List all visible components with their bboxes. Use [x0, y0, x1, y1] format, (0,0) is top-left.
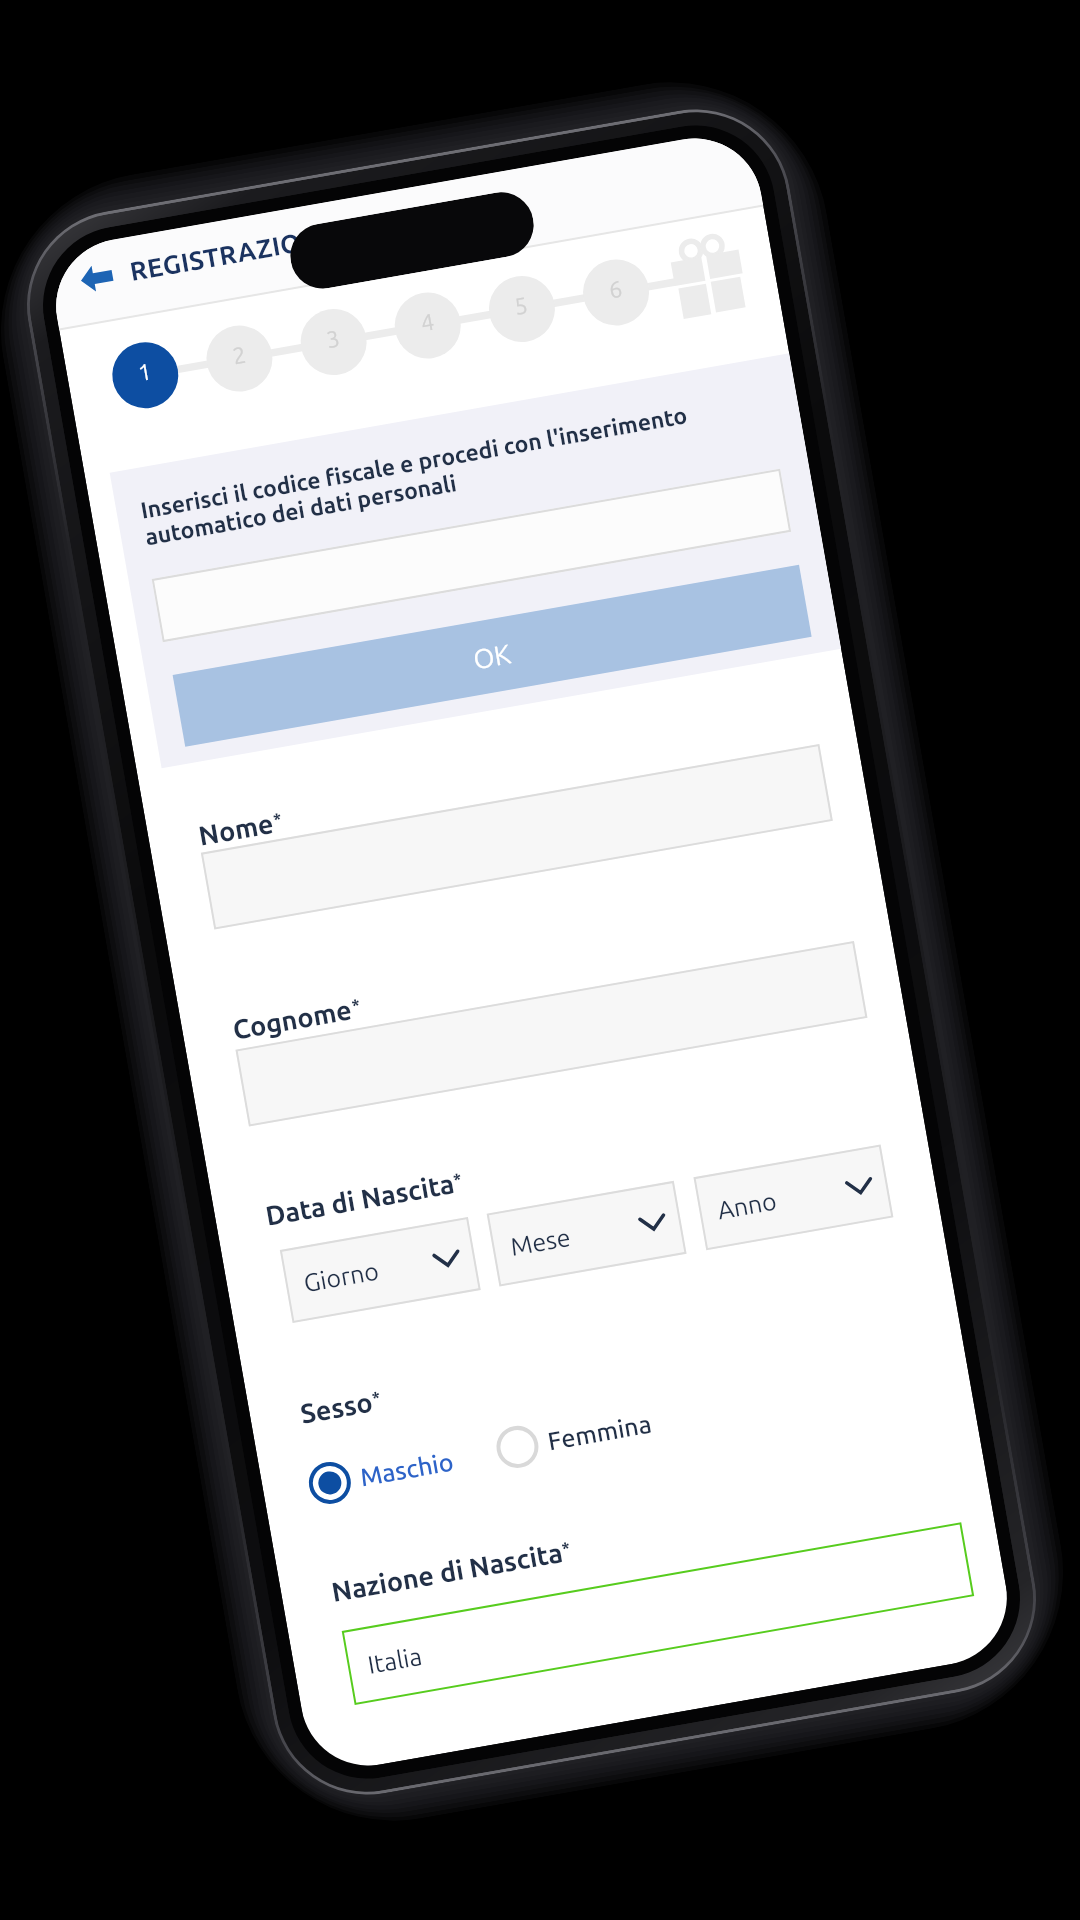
staticText: Giorno [301, 1256, 381, 1297]
button[interactable] [235, 941, 867, 1126]
staticText: Data di Nascita [263, 1168, 456, 1231]
staticText: Maschio [358, 1447, 455, 1491]
staticText: 4 [411, 307, 443, 338]
button[interactable]: Giorno [280, 1217, 481, 1323]
staticText: Sesso [298, 1387, 375, 1429]
staticText: * [452, 1169, 464, 1189]
staticText: Nome [196, 808, 276, 851]
staticText: Anno [715, 1186, 779, 1224]
button[interactable]: OK [173, 565, 812, 747]
staticText: Cognome [230, 994, 355, 1045]
staticText: * [560, 1537, 572, 1558]
staticText: 1 [129, 357, 161, 387]
button[interactable]: Italia [342, 1522, 974, 1705]
staticText: * [271, 808, 284, 829]
button[interactable]: Back [77, 257, 119, 299]
staticText: 6 [599, 274, 632, 305]
button[interactable]: Mese [487, 1181, 686, 1287]
staticText: OK [471, 638, 513, 674]
button[interactable]: Anno [693, 1144, 893, 1250]
staticText: 3 [317, 324, 349, 354]
staticText: Nazione di Nascita [329, 1537, 565, 1607]
button[interactable]: Femmina [492, 1399, 656, 1475]
staticText: REGISTRAZIONE [128, 221, 338, 286]
button[interactable] [152, 469, 791, 642]
staticText: Inserisci il codice fiscale e procedi co… [138, 387, 778, 550]
staticText: * [370, 1387, 382, 1407]
staticText: * [350, 994, 362, 1015]
staticText: Italia [366, 1642, 425, 1679]
button[interactable] [201, 744, 833, 929]
button[interactable]: Maschio [305, 1437, 457, 1511]
staticText: 2 [223, 340, 255, 371]
staticText: 5 [505, 291, 537, 321]
staticText: Femmina [546, 1410, 654, 1455]
staticText: Mese [508, 1223, 573, 1261]
